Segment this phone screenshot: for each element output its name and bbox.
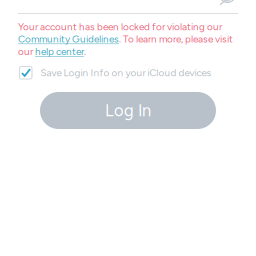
button[interactable]: Save Login Info on your iCloud devices	[19, 66, 241, 79]
staticText: Log In	[105, 101, 151, 120]
button[interactable]: Hide password	[219, 0, 235, 6]
button[interactable]: Log In	[40, 92, 216, 129]
staticText: Your account has been locked for violati…	[18, 21, 233, 58]
staticText: Save Login Info on your iCloud devices	[40, 67, 211, 79]
